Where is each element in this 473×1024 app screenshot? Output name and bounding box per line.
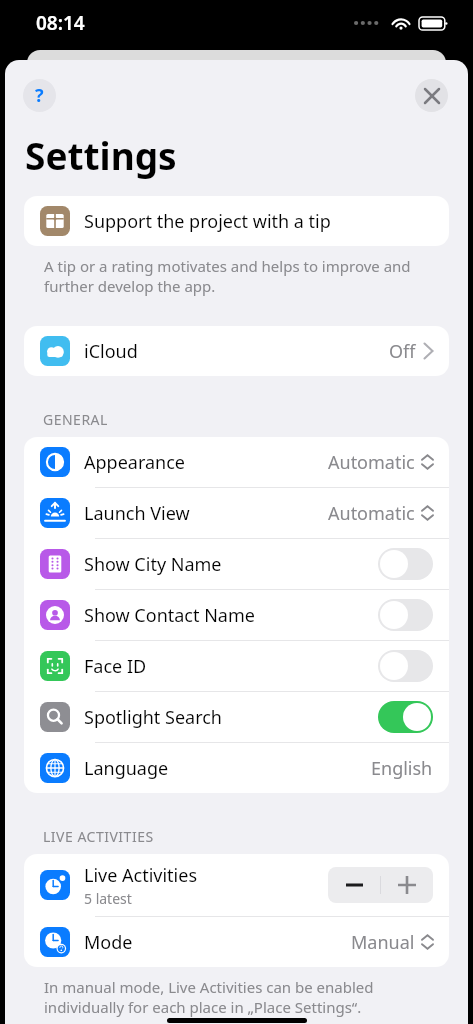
staticText: Language xyxy=(84,756,169,781)
staticText: 5 latest xyxy=(84,889,132,908)
staticText: Appearance xyxy=(84,450,185,475)
staticText: Live Activities xyxy=(84,863,198,888)
staticText: ? xyxy=(35,83,44,108)
button[interactable]: Show City Name xyxy=(24,539,449,589)
staticText: Spotlight Search xyxy=(84,705,222,730)
staticText: Automatic xyxy=(328,501,415,526)
button[interactable]: iCloud xyxy=(24,326,449,376)
staticText: Settings xyxy=(25,130,177,180)
staticText: Off xyxy=(389,339,416,364)
staticText: 08:14 xyxy=(36,10,85,36)
staticText: English xyxy=(371,756,433,781)
staticText: Launch View xyxy=(84,501,190,526)
button[interactable]: Close xyxy=(415,79,448,112)
staticText: Show Contact Name xyxy=(84,603,255,628)
staticText: In manual mode, Live Activities can be e… xyxy=(44,977,438,1017)
button[interactable]: Language xyxy=(24,743,449,793)
staticText: Manual xyxy=(351,930,415,955)
button[interactable]: Show Contact Name xyxy=(24,590,449,640)
button[interactable]: Support the project with a tip xyxy=(24,196,449,246)
staticText: Show City Name xyxy=(84,552,222,577)
button[interactable]: Face ID xyxy=(24,641,449,691)
button[interactable]: Show City Name xyxy=(378,548,433,580)
button[interactable]: Spotlight Search xyxy=(378,701,433,733)
staticText: Face ID xyxy=(84,654,147,679)
button[interactable]: Help xyxy=(23,79,56,112)
staticText: Mode xyxy=(84,930,133,955)
button[interactable]: Mode xyxy=(24,917,449,967)
button[interactable]: Spotlight Search xyxy=(24,692,449,742)
button[interactable]: Face ID xyxy=(378,650,433,682)
staticText: Support the project with a tip xyxy=(84,209,331,234)
button[interactable]: Live Activities xyxy=(24,854,449,916)
staticText: LIVE ACTIVITIES xyxy=(43,827,154,846)
button[interactable]: Launch View xyxy=(24,488,449,538)
staticText: iCloud xyxy=(84,339,138,364)
button[interactable]: Show Contact Name xyxy=(378,599,433,631)
button[interactable]: Increase xyxy=(381,867,433,903)
staticText: GENERAL xyxy=(43,410,108,429)
button[interactable]: Decrease xyxy=(328,867,380,903)
staticText: Automatic xyxy=(328,450,415,475)
button[interactable]: Appearance xyxy=(24,437,449,487)
staticText: A tip or a rating motivates and helps to… xyxy=(44,256,438,296)
